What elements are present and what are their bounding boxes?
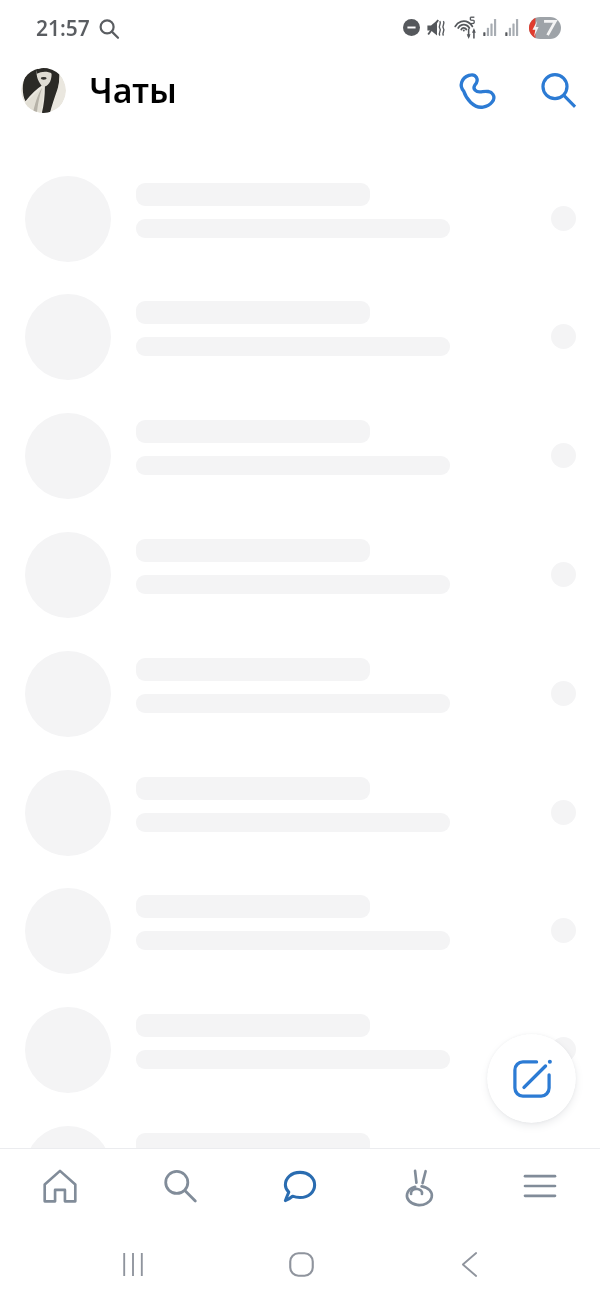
button[interactable]: Menu [480,1149,600,1223]
button[interactable]: Recent apps [107,1238,159,1290]
staticText: 21:57 [36,14,90,43]
button[interactable]: Write message [487,1034,576,1123]
staticText: Чаты [89,67,177,113]
button[interactable]: Chats [240,1149,360,1223]
button[interactable]: Calls [452,67,500,115]
button[interactable]: Clips [360,1149,480,1223]
button[interactable]: Search [120,1149,240,1223]
button[interactable]: Home [0,1149,120,1223]
button[interactable]: Search [534,66,582,114]
button[interactable]: Back [443,1238,495,1290]
button[interactable]: Profile [21,68,66,113]
button[interactable]: Home [275,1238,327,1290]
